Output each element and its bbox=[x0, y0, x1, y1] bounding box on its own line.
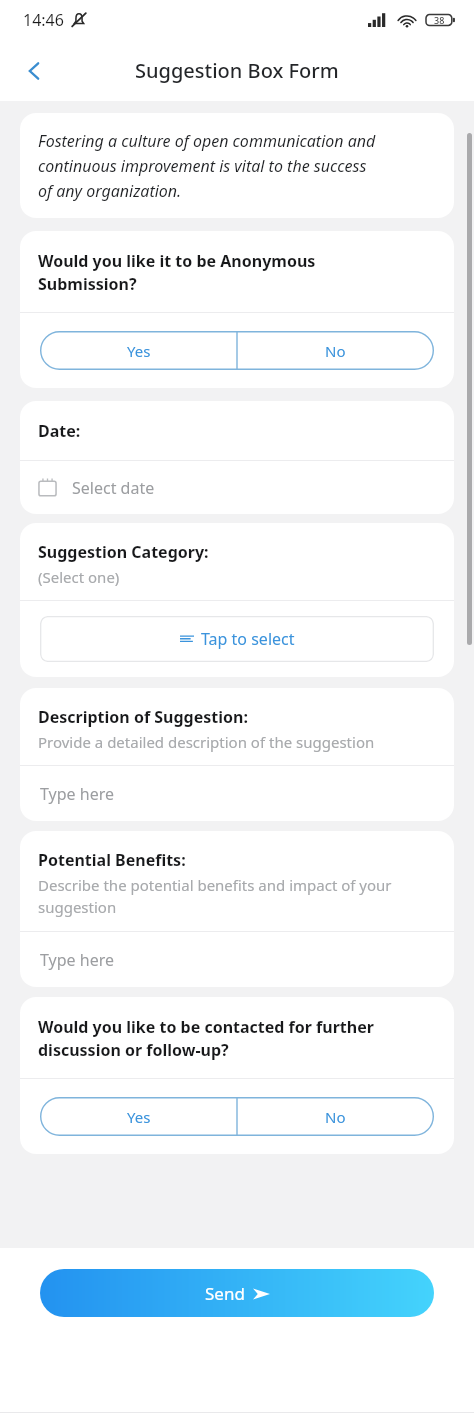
button[interactable]: Yes bbox=[40, 1097, 237, 1136]
staticText: Would you like it to be Anonymous Submis… bbox=[38, 250, 316, 295]
button[interactable]: Back bbox=[12, 49, 56, 93]
staticText: No bbox=[325, 1107, 346, 1127]
staticText: Type here bbox=[40, 783, 114, 805]
staticText: Suggestion Box Form bbox=[135, 57, 339, 84]
button[interactable]: Type here bbox=[20, 932, 454, 987]
staticText: Potential Benefits: bbox=[38, 849, 186, 871]
staticText: Send bbox=[205, 1282, 245, 1305]
staticText: 14:46 bbox=[23, 9, 64, 31]
staticText: 38 bbox=[434, 14, 445, 26]
staticText: Yes bbox=[127, 341, 151, 361]
button[interactable]: Yes bbox=[40, 331, 237, 370]
staticText: Would you like to be contacted for furth… bbox=[38, 1016, 374, 1061]
staticText: Provide a detailed description of the su… bbox=[38, 732, 375, 752]
staticText: Describe the potential benefits and impa… bbox=[38, 875, 392, 918]
staticText: Tap to select bbox=[201, 628, 295, 650]
button[interactable]: Type here bbox=[20, 766, 454, 821]
staticText: Yes bbox=[127, 1107, 151, 1127]
button[interactable]: Select date bbox=[20, 461, 454, 514]
button[interactable]: Tap to select bbox=[40, 616, 434, 662]
staticText: No bbox=[325, 341, 346, 361]
staticText: Fostering a culture of open communicatio… bbox=[38, 130, 376, 201]
staticText: Suggestion Category: bbox=[38, 541, 209, 563]
staticText: (Select one) bbox=[38, 567, 120, 587]
staticText: Description of Suggestion: bbox=[38, 706, 248, 728]
button[interactable]: No bbox=[237, 1097, 434, 1136]
button[interactable]: Send bbox=[40, 1269, 434, 1317]
staticText: Type here bbox=[40, 949, 114, 971]
staticText: Select date bbox=[72, 477, 155, 499]
staticText: Date: bbox=[38, 420, 81, 442]
button[interactable]: No bbox=[237, 331, 434, 370]
